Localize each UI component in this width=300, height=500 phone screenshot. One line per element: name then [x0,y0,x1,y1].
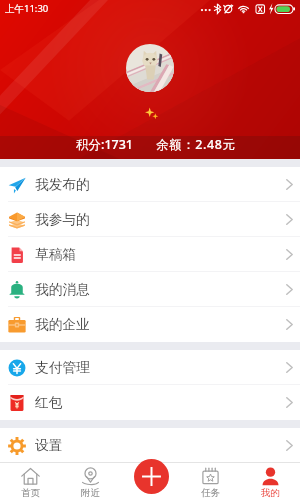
button[interactable]: 支付管理 [0,350,300,385]
button[interactable]: 任务 [180,462,240,500]
button[interactable]: 我参与的 [0,202,300,237]
button[interactable]: 发布 [134,459,169,494]
button[interactable]: 设置 [0,428,300,463]
staticText: 首页 [21,487,40,499]
staticText: 我的消息 [35,281,90,298]
staticText: 任务 [201,487,220,499]
staticText: 草稿箱 [35,246,77,263]
button[interactable]: 红包 [0,385,300,420]
staticText: 我参与的 [35,211,90,228]
staticText: 附近 [81,487,100,499]
button[interactable]: 首页 [0,462,60,500]
staticText: 红包 [35,394,63,411]
button[interactable]: 我的消息 [0,272,300,307]
staticText: 我发布的 [35,176,90,193]
button[interactable]: 头像 [126,44,174,92]
staticText: 我的 [261,487,280,499]
button[interactable]: 我的 [240,462,300,500]
button[interactable]: 我发布的 [0,167,300,202]
button[interactable]: 附近 [60,462,120,500]
staticText: 设置 [35,437,63,454]
staticText: 积分:1731 [76,136,134,153]
button[interactable]: 草稿箱 [0,237,300,272]
staticText: 我的企业 [35,316,90,333]
staticText: 上午11:30 [5,2,49,15]
staticText: 余额：2.48元 [156,136,236,153]
button[interactable]: 我的企业 [0,307,300,342]
staticText: 支付管理 [35,359,90,376]
